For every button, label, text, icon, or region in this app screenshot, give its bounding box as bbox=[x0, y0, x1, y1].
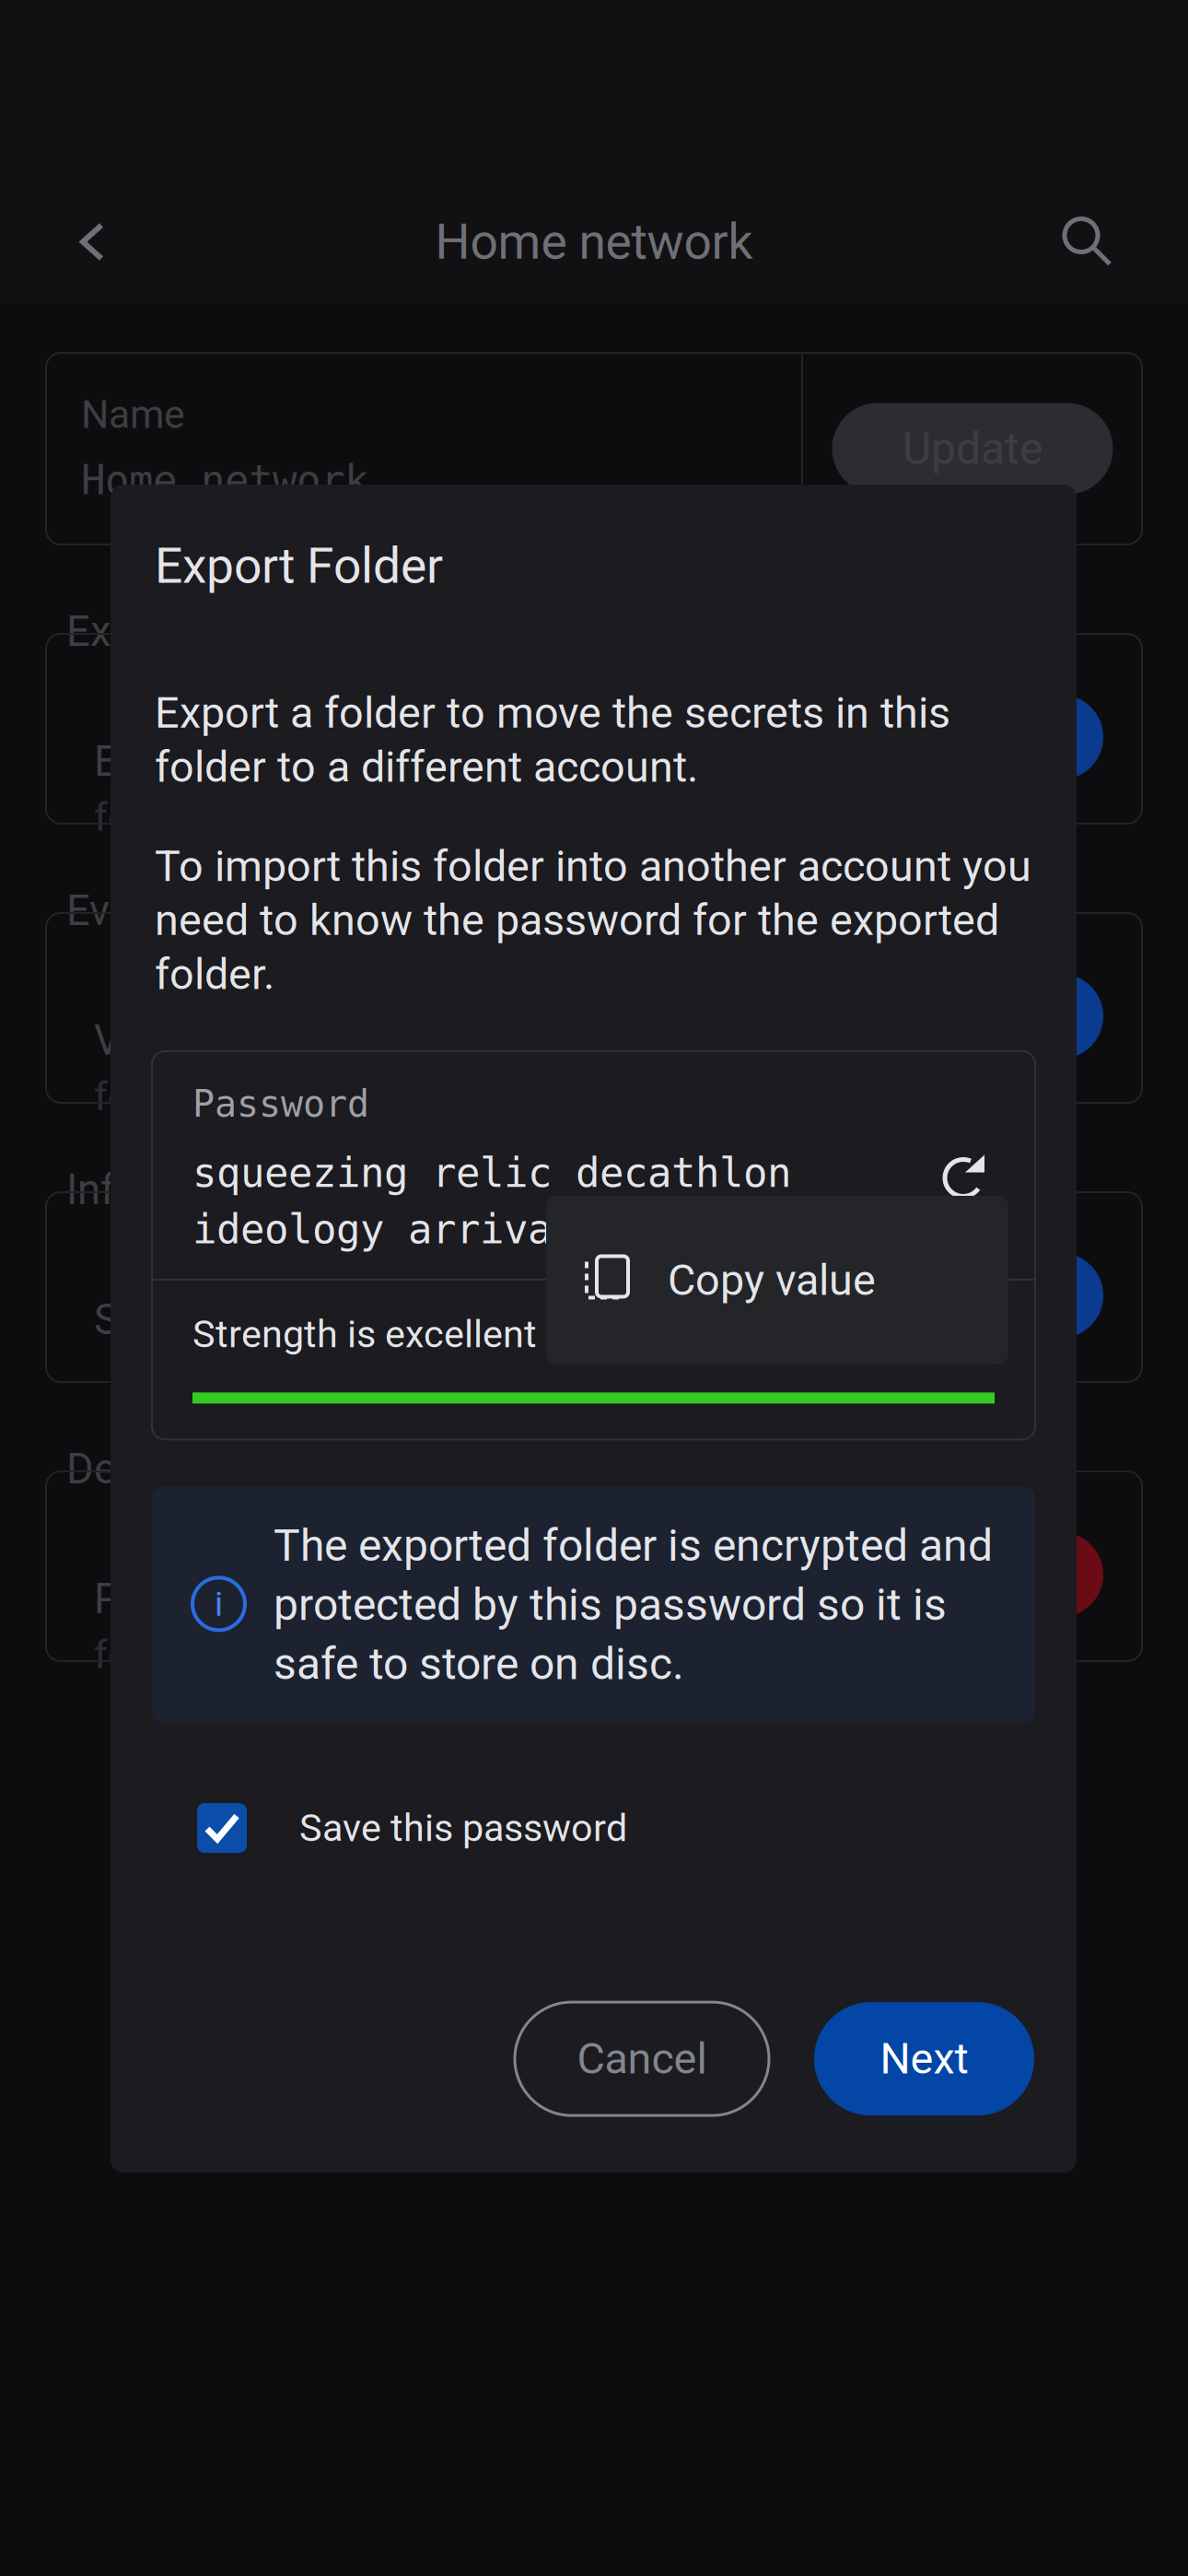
staticText: Delete bbox=[66, 1445, 184, 1493]
staticText: folder bbox=[94, 794, 195, 840]
staticText: Export Folder bbox=[155, 537, 443, 595]
button[interactable]: Regenerate password bbox=[943, 1149, 1035, 1201]
staticText: Copy value bbox=[668, 1255, 876, 1305]
staticText: i bbox=[215, 1584, 223, 1624]
staticText: Info bbox=[66, 1165, 139, 1214]
staticText: folder bbox=[94, 1073, 195, 1119]
staticText: Name bbox=[81, 392, 185, 438]
button[interactable]: Next bbox=[814, 2002, 1034, 2115]
staticText: Password bbox=[192, 1082, 369, 1125]
staticText: To import this folder into another accou… bbox=[155, 841, 1031, 1000]
staticText: Permanently bbox=[94, 1575, 327, 1623]
staticText: folder bbox=[94, 1632, 195, 1678]
staticText: Export bbox=[66, 607, 186, 656]
staticText: Secrets bbox=[94, 1295, 234, 1344]
staticText: Strength is excellent bbox=[192, 1312, 537, 1356]
staticText: Next bbox=[880, 2034, 968, 2084]
staticText: squeezing relic decathlon ideology arriv… bbox=[192, 1149, 791, 1253]
staticText: The exported folder is encrypted and pro… bbox=[274, 1520, 993, 1690]
staticText: Save this password bbox=[299, 1806, 627, 1850]
staticText: Export a folder to move the secrets in t… bbox=[155, 688, 950, 792]
staticText: Cancel bbox=[577, 2034, 707, 2084]
staticText: Home network bbox=[435, 213, 753, 271]
button[interactable]: Cancel bbox=[515, 2002, 769, 2115]
button[interactable]: Search bbox=[1068, 181, 1188, 303]
staticText: View this bbox=[94, 1016, 262, 1065]
button[interactable]: Save this password bbox=[111, 1785, 1077, 1871]
staticText: Home network bbox=[81, 457, 368, 504]
staticText: Export this bbox=[94, 737, 292, 786]
staticText: Everyone bbox=[66, 886, 235, 935]
staticText: Update bbox=[903, 423, 1042, 475]
button[interactable]: Back bbox=[0, 181, 120, 303]
